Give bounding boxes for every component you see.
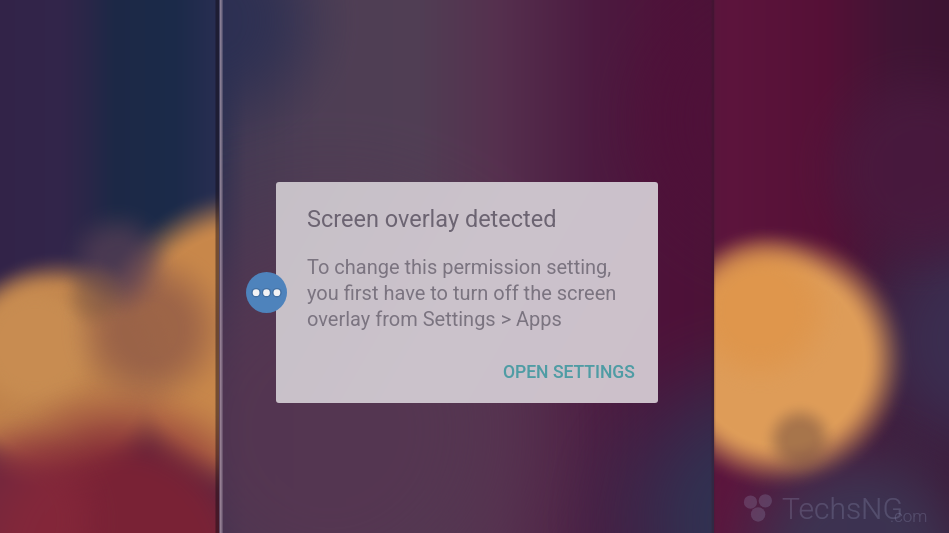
staticText: OPEN SETTINGS <box>503 362 635 383</box>
button[interactable]: More options <box>246 272 287 313</box>
staticText: .com <box>890 506 928 526</box>
staticText: To change this permission setting, you f… <box>307 255 617 330</box>
staticText: Screen overlay detected <box>307 205 557 233</box>
staticText: TechsNG <box>782 491 903 526</box>
button[interactable]: OPEN SETTINGS <box>494 354 644 391</box>
